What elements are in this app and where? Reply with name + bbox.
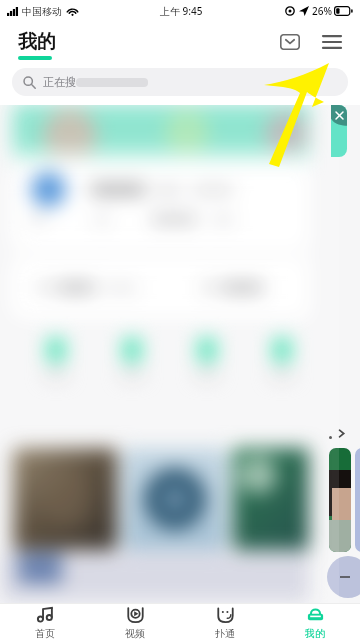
button[interactable] (244, 338, 319, 378)
button[interactable] (18, 338, 94, 378)
staticText: 我的 (18, 30, 56, 54)
button[interactable]: 视频 (90, 604, 180, 640)
staticText: 首页 (35, 627, 55, 640)
button[interactable]: Close (331, 105, 347, 157)
button[interactable]: 我的 (270, 604, 360, 640)
button[interactable]: 正在搜 (12, 68, 348, 96)
button[interactable] (94, 338, 169, 378)
staticText: 我的 (305, 627, 325, 640)
button[interactable] (12, 167, 339, 250)
staticText: 中国移动 (22, 5, 62, 18)
button[interactable] (169, 338, 244, 378)
button[interactable]: 首页 (0, 604, 90, 640)
button[interactable]: Menu (317, 27, 347, 57)
button[interactable] (13, 106, 335, 162)
button[interactable]: 扑通 (180, 604, 270, 640)
staticText: 上午 9:45 (160, 4, 203, 18)
button[interactable]: Messages (275, 27, 305, 57)
staticText: 26% (312, 4, 332, 18)
staticText: 扑通 (215, 627, 235, 640)
staticText: 视频 (125, 627, 145, 640)
staticText: 正在搜 (43, 75, 76, 89)
